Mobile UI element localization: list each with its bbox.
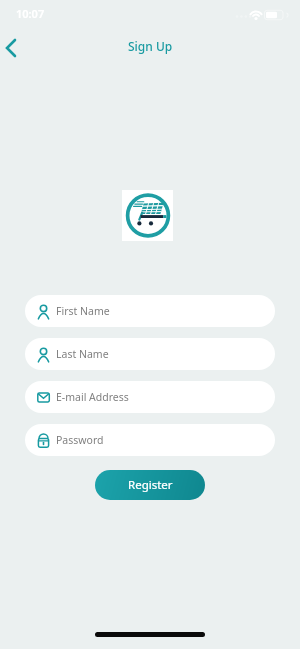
staticText: E-mail Address [56, 390, 129, 404]
staticText: Password [56, 433, 104, 447]
staticText: Sign Up [128, 38, 173, 54]
button[interactable]: First Name [25, 295, 275, 327]
button[interactable]: E-mail Address [25, 381, 275, 413]
staticText: 10:07 [16, 6, 45, 21]
button[interactable] [0, 36, 28, 62]
staticText: Register [128, 477, 173, 493]
button[interactable]: Password [25, 424, 275, 456]
button[interactable]: Register [95, 470, 205, 500]
staticText: Last Name [56, 347, 109, 361]
staticText: First Name [56, 304, 110, 318]
button[interactable]: Last Name [25, 338, 275, 370]
